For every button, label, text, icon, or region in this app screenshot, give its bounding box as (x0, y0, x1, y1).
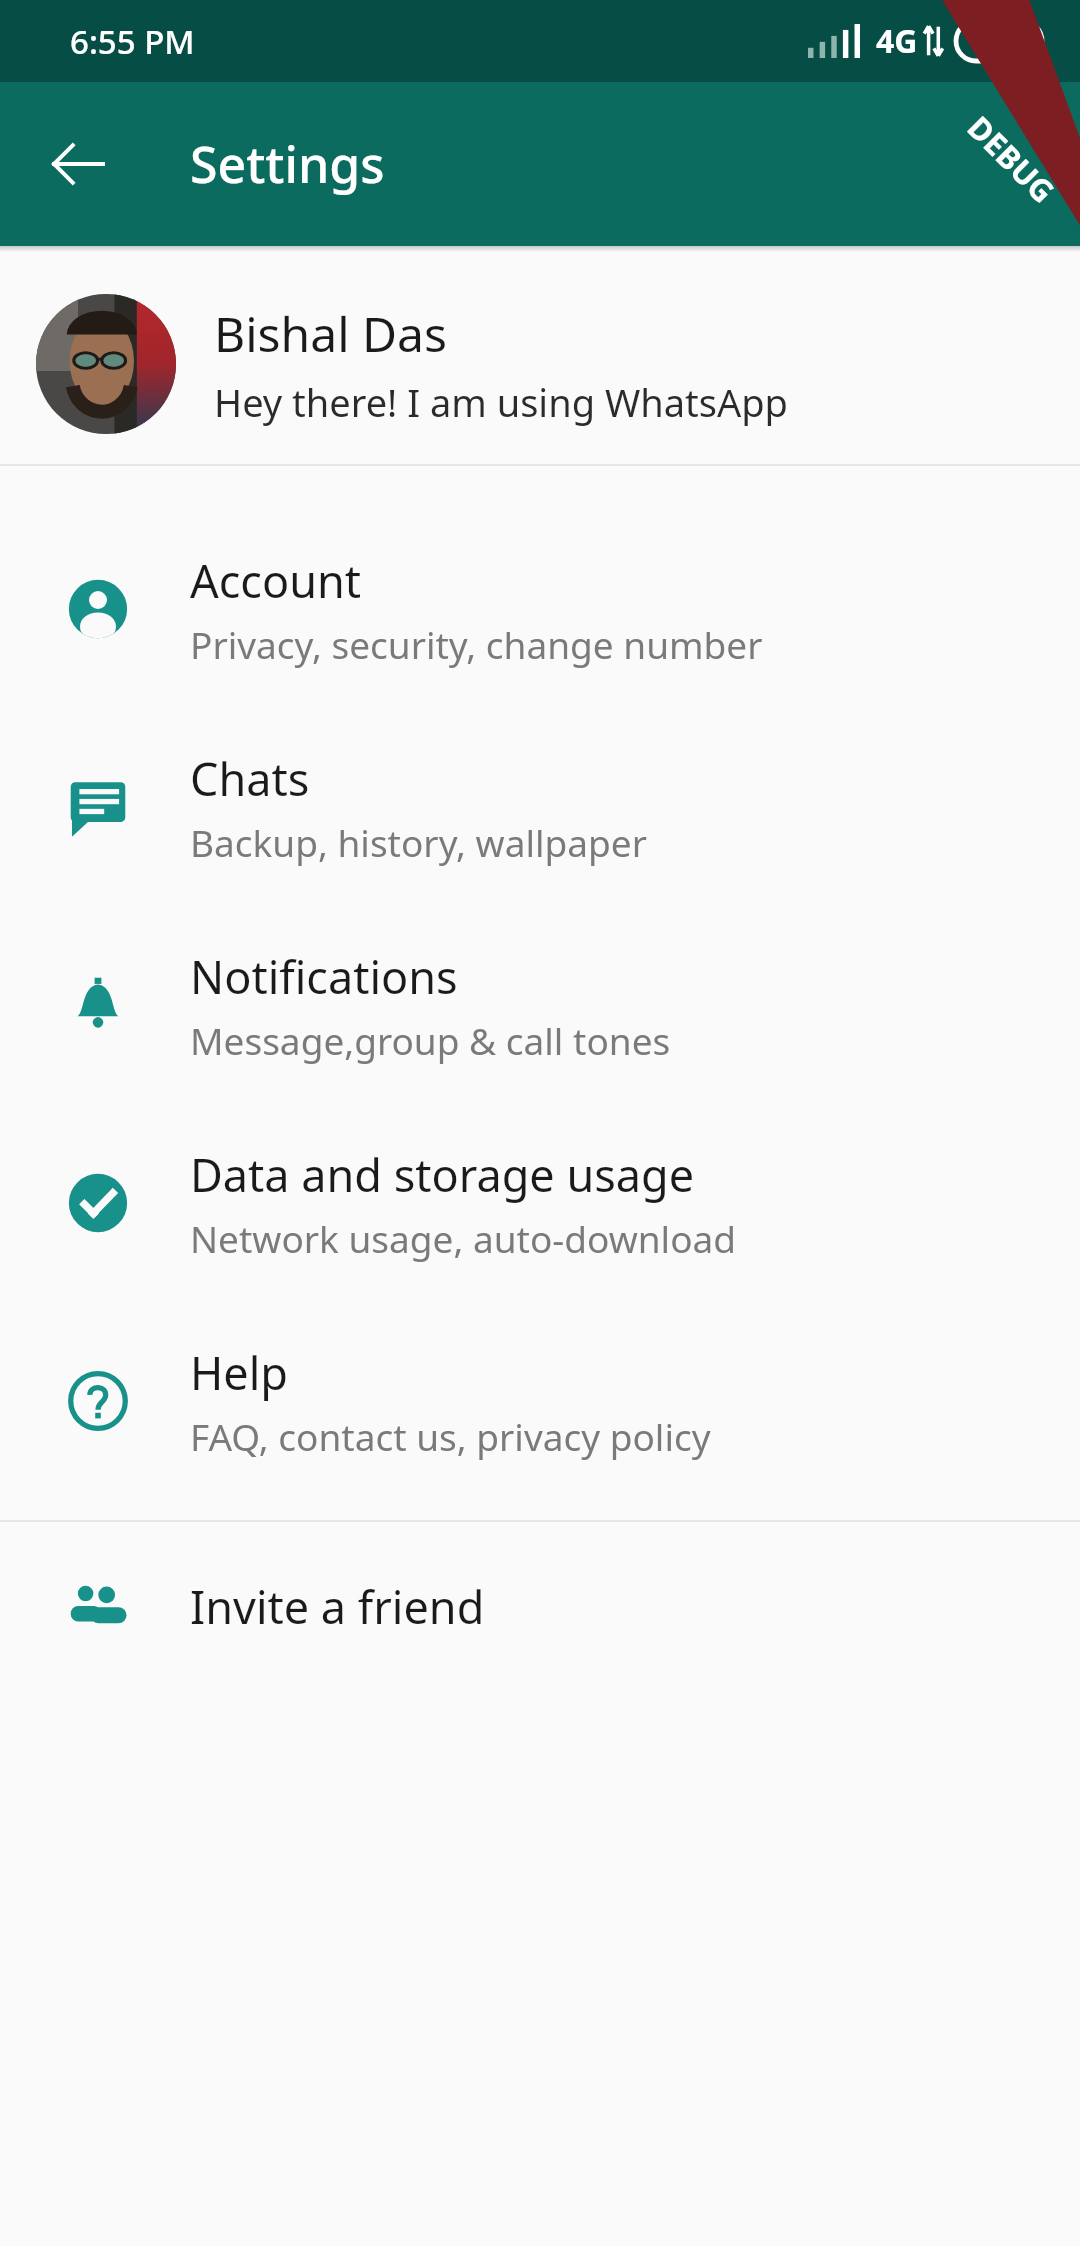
staticText: Help (190, 1342, 289, 1403)
staticText: Hey there! I am using WhatsApp (214, 376, 788, 428)
button[interactable]: Invite a friend (0, 1522, 1080, 1690)
staticText: Chats (190, 748, 310, 809)
button[interactable]: Data and storage usage (0, 1104, 1080, 1302)
staticText: Backup, history, wallpaper (190, 817, 647, 867)
staticText: Invite a friend (190, 1576, 485, 1637)
staticText: Account (190, 550, 362, 611)
staticText: Notifications (190, 946, 458, 1007)
button[interactable]: Notifications (0, 906, 1080, 1104)
staticText: Message,group & call tones (190, 1015, 671, 1065)
staticText: DEBUG (959, 106, 1064, 212)
staticText: Settings (190, 130, 385, 198)
button[interactable]: Chats (0, 708, 1080, 906)
staticText: FAQ, contact us, privacy policy (190, 1411, 711, 1461)
staticText: Data and storage usage (190, 1144, 695, 1205)
button[interactable]: Back (30, 116, 126, 212)
staticText: 6:55 PM (70, 19, 195, 64)
button[interactable]: Account (0, 510, 1080, 708)
button[interactable]: Help (0, 1302, 1080, 1500)
staticText: Bishal Das (214, 301, 447, 366)
staticText: 4G (876, 19, 918, 63)
staticText: Privacy, security, change number (190, 619, 763, 669)
staticText: Network usage, auto-download (190, 1213, 737, 1263)
button[interactable]: Bishal Das (0, 264, 1080, 464)
